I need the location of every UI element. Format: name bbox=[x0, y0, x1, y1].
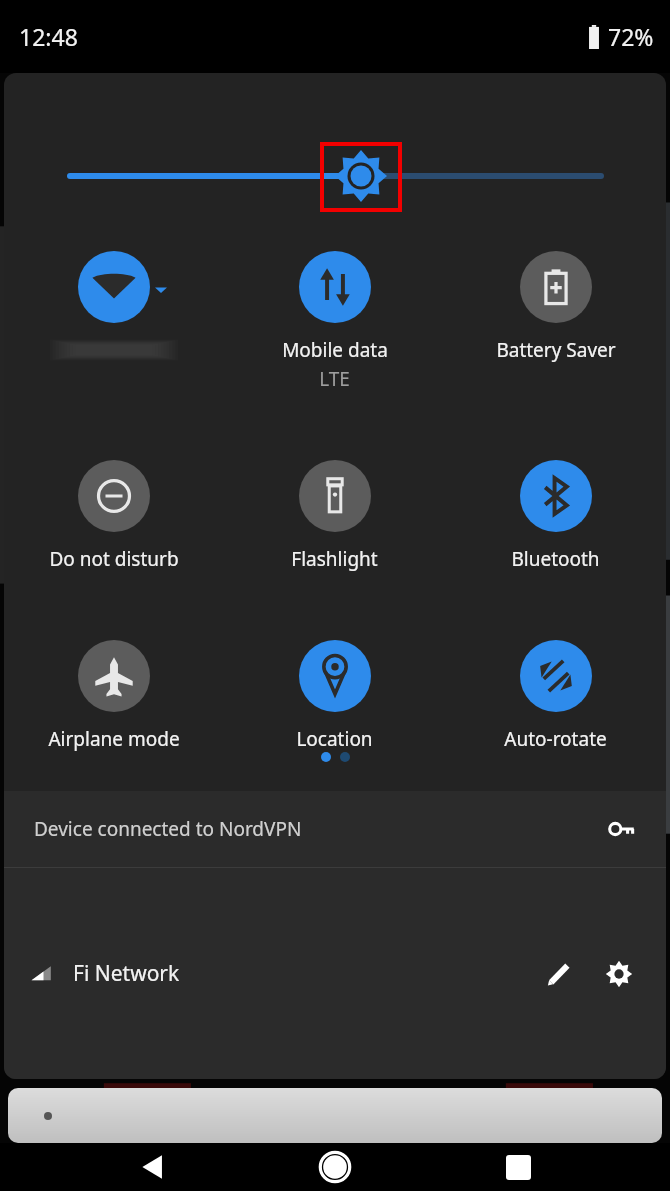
button[interactable]: Edit bbox=[536, 951, 582, 997]
staticText: Mobile data bbox=[282, 337, 388, 363]
staticText: 12:48 bbox=[19, 21, 78, 52]
staticText: Device connected to NordVPN bbox=[34, 816, 302, 842]
button[interactable]: Settings bbox=[596, 951, 642, 997]
staticText: Flashlight bbox=[291, 546, 378, 572]
button[interactable]: Mobile data bbox=[224, 251, 445, 392]
button[interactable]: Flashlight bbox=[224, 460, 445, 572]
button[interactable]: Battery Saver bbox=[445, 251, 666, 363]
staticText: Location bbox=[296, 726, 373, 752]
button[interactable]: Home bbox=[305, 1143, 365, 1191]
staticText: LTE bbox=[319, 366, 350, 392]
staticText: Do not disturb bbox=[49, 546, 179, 572]
staticText: Battery Saver bbox=[496, 337, 616, 363]
button[interactable]: Auto-rotate bbox=[445, 640, 666, 752]
other: VPN bbox=[608, 815, 636, 843]
button[interactable]: Fi Network bbox=[30, 959, 180, 988]
button[interactable]: Brightness bbox=[4, 143, 666, 209]
button[interactable]: Location bbox=[224, 640, 445, 752]
button[interactable]: Back bbox=[123, 1143, 183, 1191]
staticText: Fi Network bbox=[73, 959, 180, 988]
button[interactable]: Bluetooth bbox=[445, 460, 666, 572]
button[interactable] bbox=[8, 1088, 662, 1143]
button[interactable]: Airplane mode bbox=[4, 640, 224, 752]
staticText: Bluetooth bbox=[511, 546, 600, 572]
button[interactable]: Do not disturb bbox=[4, 460, 224, 572]
button[interactable]: Wi-Fi bbox=[4, 251, 224, 363]
staticText: 72% bbox=[608, 21, 654, 52]
button[interactable]: Recent apps bbox=[488, 1143, 548, 1191]
button[interactable]: Device connected to NordVPN bbox=[4, 791, 666, 867]
staticText: Auto-rotate bbox=[504, 726, 607, 752]
staticText: Airplane mode bbox=[48, 726, 180, 752]
